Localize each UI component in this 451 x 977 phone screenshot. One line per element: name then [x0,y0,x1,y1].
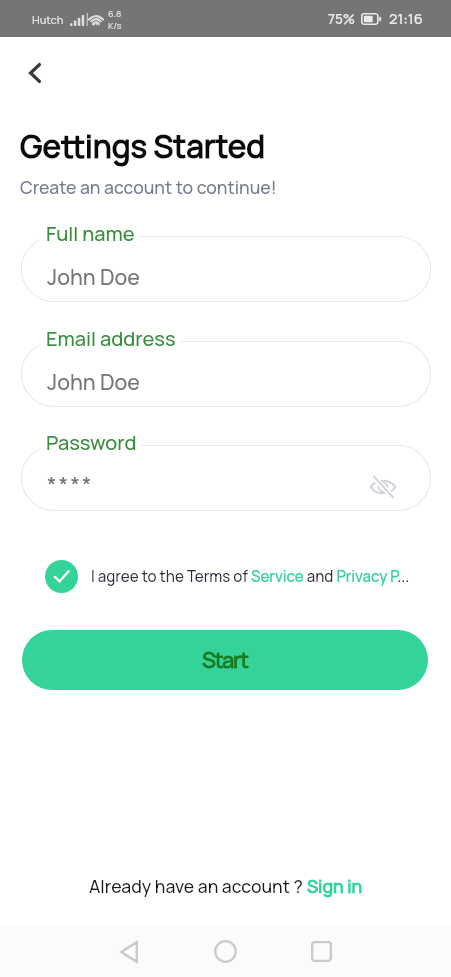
staticText: I agree to the Terms of Service and Priv… [91,566,410,587]
button[interactable]: **** [21,445,431,511]
staticText: Hutch [32,12,64,27]
staticText: K/s [108,19,122,31]
staticText: Already have an account ? [89,874,307,898]
button[interactable]: Start [22,630,428,690]
button[interactable]: John Doe [21,341,431,407]
staticText: Email address [46,325,176,352]
button[interactable]: John Doe [21,236,431,302]
button[interactable]: Recent apps [297,927,346,976]
staticText: John Doe [47,367,140,396]
staticText: Password [46,429,137,456]
button[interactable]: Back [13,51,56,94]
button[interactable]: Agree to terms [45,560,78,593]
staticText: Full name [46,220,135,247]
staticText: **** [47,470,94,499]
staticText: Create an account to continue! [20,175,277,199]
staticText: John Doe [47,262,140,291]
staticText: Start [202,645,248,675]
button[interactable]: Home [201,927,250,976]
staticText: 75% [328,10,355,28]
button[interactable]: Back [104,927,153,976]
staticText: 21:16 [389,9,423,29]
staticText: Gettings Started [20,125,266,168]
button[interactable]: Show password [366,470,400,504]
staticText: Sign in [307,874,363,898]
staticText: 6.8 [108,7,122,19]
button[interactable]: Sign in [307,874,363,898]
